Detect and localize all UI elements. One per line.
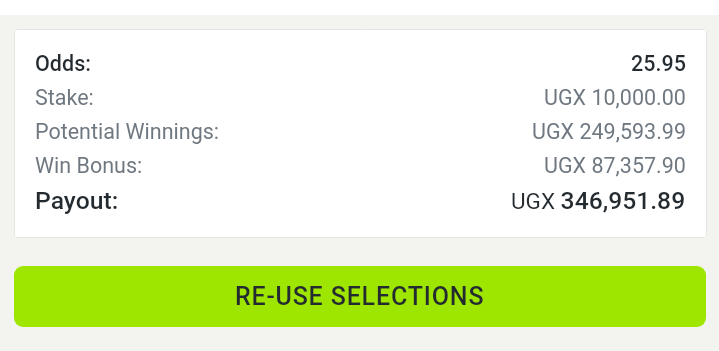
staticText: UGX 10,000.00 [544,85,686,110]
button[interactable]: RE-USE SELECTIONS [14,266,706,327]
staticText: Stake: [35,85,94,110]
staticText: Odds: [35,51,91,76]
staticText: UGX 249,593.99 [532,119,686,144]
staticText: UGX 87,357.90 [544,153,686,178]
staticText: UGX 346,951.89 [511,186,686,215]
staticText: Win Bonus: [35,153,143,178]
staticText: Potential Winnings: [35,119,220,144]
staticText: RE-USE SELECTIONS [235,282,485,311]
staticText: Payout: [35,186,119,215]
staticText: 25.95 [631,51,686,76]
